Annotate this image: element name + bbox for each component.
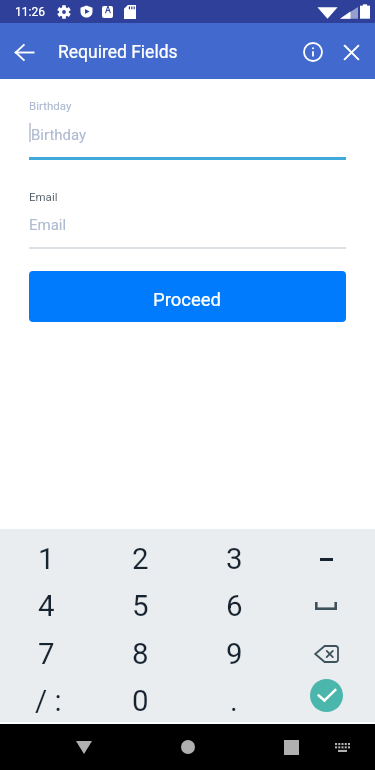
button[interactable]: 4 <box>0 586 93 626</box>
button[interactable]: / : <box>0 681 93 721</box>
staticText: . <box>230 684 238 719</box>
staticText: 2 <box>132 542 149 577</box>
button[interactable]: Done <box>281 681 375 721</box>
staticText: Email <box>29 190 58 203</box>
button[interactable]: 3 <box>187 539 281 579</box>
button[interactable]: 5 <box>93 586 187 626</box>
staticText: Proceed <box>153 289 222 311</box>
button[interactable]: Minus <box>281 539 375 579</box>
button[interactable]: 6 <box>187 586 281 626</box>
staticText: 11:26 <box>15 5 45 19</box>
button[interactable]: Proceed <box>29 271 346 322</box>
staticText: 5 <box>132 589 149 624</box>
staticText: 9 <box>226 637 243 672</box>
staticText: Required Fields <box>58 42 178 63</box>
button[interactable]: 1 <box>0 539 93 579</box>
button[interactable]: Close <box>331 32 371 72</box>
button[interactable]: Info <box>293 32 333 72</box>
button[interactable]: Back <box>61 724 107 770</box>
button[interactable]: 7 <box>0 634 93 674</box>
staticText: Birthday <box>29 99 72 112</box>
button[interactable]: 9 <box>187 634 281 674</box>
button[interactable]: Back <box>4 32 44 72</box>
staticText: A <box>105 6 111 16</box>
staticText: Birthday <box>31 126 87 144</box>
button[interactable]: Space <box>281 586 375 626</box>
staticText: 4 <box>38 589 55 624</box>
button[interactable]: . <box>187 681 281 721</box>
button[interactable]: Keyboard <box>322 727 363 768</box>
staticText: 0 <box>132 684 149 719</box>
staticText: / : <box>35 684 62 719</box>
button[interactable]: 0 <box>93 681 187 721</box>
staticText: Email <box>29 216 67 234</box>
staticText: 7 <box>38 637 55 672</box>
staticText: 1 <box>38 542 55 577</box>
staticText: 3 <box>226 542 243 577</box>
staticText: 8 <box>132 637 149 672</box>
button[interactable]: 8 <box>93 634 187 674</box>
button[interactable]: Recents <box>268 724 314 770</box>
button[interactable]: Backspace <box>281 634 375 674</box>
staticText: 6 <box>226 589 243 624</box>
button[interactable]: Home <box>165 724 211 770</box>
button[interactable]: 2 <box>93 539 187 579</box>
